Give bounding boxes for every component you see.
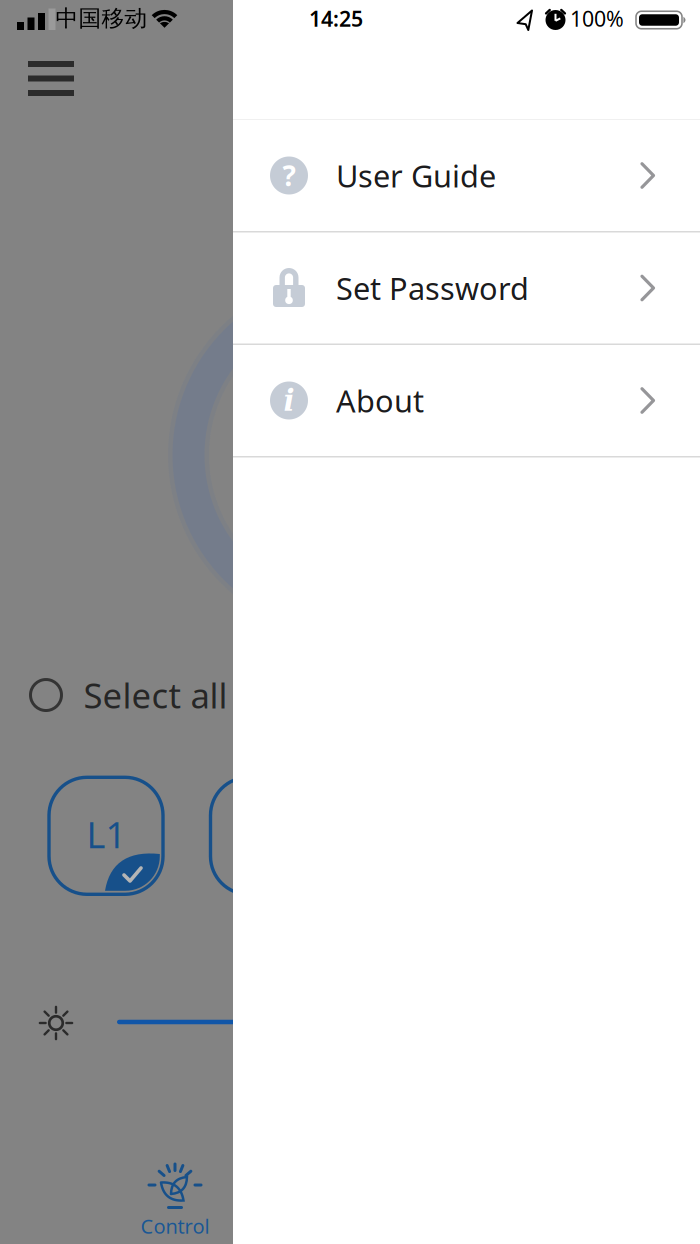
button[interactable]: Control [95,1156,255,1240]
button[interactable]: L1 [49,777,163,894]
staticText: L1 [86,810,126,858]
staticText: Select all [83,672,227,718]
staticText: 100% [570,4,624,33]
staticText: Set Password [336,268,529,308]
staticText: ? [282,157,295,194]
button[interactable]: i [233,345,700,456]
button[interactable]: Set Password [233,232,700,343]
staticText: About [336,380,424,421]
staticText: 中国移动 [55,5,147,32]
button[interactable]: ? [233,120,700,231]
staticText: Control [140,1213,209,1239]
button[interactable]: Menu [28,61,74,96]
staticText: 14:25 [309,4,363,33]
staticText: User Guide [336,155,496,196]
button[interactable]: L2 [210,777,324,894]
button[interactable]: Select all [30,672,227,718]
staticText: i [283,383,294,418]
